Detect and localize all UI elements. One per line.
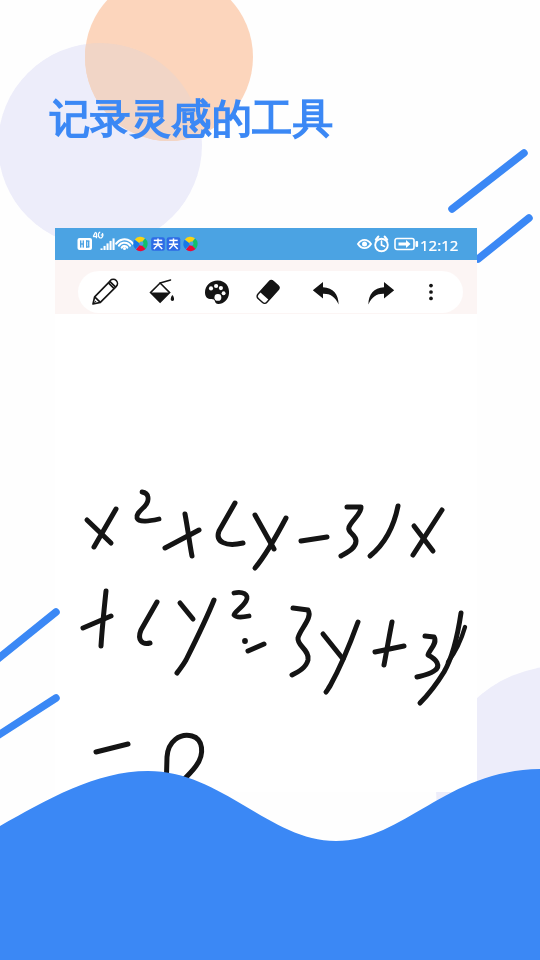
- button[interactable]: Eraser: [247, 271, 289, 313]
- button[interactable]: Pen: [84, 271, 126, 313]
- button[interactable]: Redo: [360, 271, 402, 313]
- staticText: 记录灵感的工具: [49, 94, 333, 144]
- staticText: 12:12: [420, 235, 459, 255]
- button[interactable]: More options: [410, 271, 452, 313]
- button[interactable]: Undo: [305, 271, 347, 313]
- button[interactable]: Fill: [140, 271, 182, 313]
- button[interactable]: Palette: [196, 271, 238, 313]
